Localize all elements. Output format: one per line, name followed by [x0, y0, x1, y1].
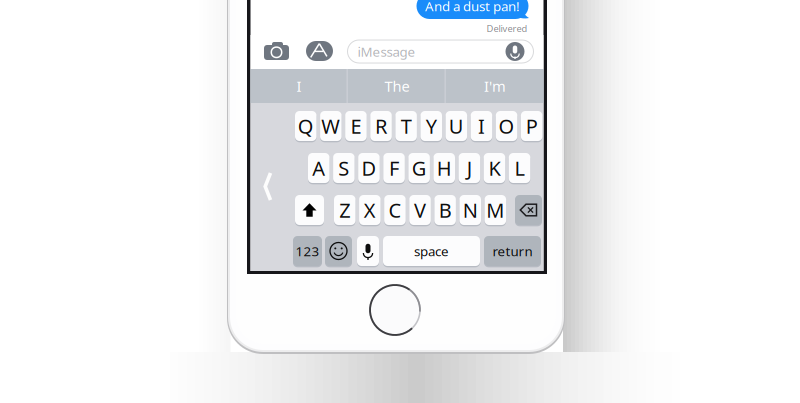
button[interactable]: L — [509, 153, 530, 185]
staticText: I — [478, 113, 485, 139]
staticText: N — [463, 197, 478, 223]
button[interactable]: K — [484, 153, 505, 185]
button[interactable]: S — [333, 153, 355, 185]
button[interactable]: D — [358, 153, 380, 185]
staticText: U — [449, 113, 464, 139]
button[interactable]: E — [345, 111, 367, 143]
staticText: F — [389, 155, 399, 181]
staticText: K — [488, 155, 500, 181]
staticText: C — [388, 197, 401, 223]
button[interactable]: O — [496, 111, 517, 143]
staticText: S — [338, 155, 349, 181]
staticText: P — [526, 113, 538, 139]
staticText: W — [321, 113, 340, 139]
button[interactable]: H — [433, 153, 455, 185]
button[interactable]: Delete — [515, 195, 542, 227]
button[interactable]: iMessage — [347, 40, 533, 63]
button[interactable]: V — [409, 195, 431, 227]
staticText: J — [467, 155, 472, 181]
button[interactable]: Z — [334, 195, 355, 227]
staticText: O — [499, 113, 515, 139]
button[interactable]: C — [384, 195, 406, 227]
button[interactable]: Q — [295, 111, 316, 143]
button[interactable]: T — [395, 111, 417, 143]
button[interactable]: space — [383, 236, 480, 268]
staticText: X — [364, 197, 376, 223]
button[interactable]: X — [359, 195, 381, 227]
button[interactable]: I'm — [446, 69, 543, 103]
staticText: B — [439, 197, 452, 223]
staticText: Q — [298, 113, 314, 139]
staticText: Z — [339, 197, 350, 223]
button[interactable]: I — [250, 69, 347, 103]
staticText: I'm — [484, 76, 506, 96]
staticText: Y — [426, 113, 437, 139]
button[interactable]: R — [370, 111, 392, 143]
staticText: T — [401, 113, 412, 139]
button[interactable]: W — [320, 111, 342, 143]
staticText: Delivered — [486, 22, 527, 35]
button[interactable]: The — [348, 69, 445, 103]
button[interactable]: P — [521, 111, 542, 143]
staticText: D — [361, 155, 376, 181]
button[interactable]: Take photo — [262, 40, 292, 62]
button[interactable]: Y — [420, 111, 442, 143]
staticText: A — [312, 155, 325, 181]
staticText: R — [375, 113, 387, 139]
staticText: E — [350, 113, 361, 139]
staticText: return — [492, 242, 532, 260]
button[interactable]: iMessage apps — [304, 40, 334, 62]
button[interactable]: N — [459, 195, 481, 227]
button[interactable]: U — [446, 111, 467, 143]
button[interactable]: G — [408, 153, 430, 185]
button[interactable]: Dictate — [357, 236, 379, 268]
staticText: I — [296, 76, 301, 96]
staticText: G — [412, 155, 427, 181]
button[interactable]: B — [434, 195, 456, 227]
staticText: V — [414, 197, 426, 223]
staticText: And a dust pan! — [425, 0, 520, 15]
staticText: L — [514, 155, 524, 181]
button[interactable]: J — [459, 153, 480, 185]
button[interactable]: Emoji — [325, 236, 352, 268]
staticText: 123 — [295, 242, 319, 260]
button[interactable]: M — [485, 195, 506, 227]
button[interactable]: return — [484, 236, 541, 268]
button[interactable]: A — [308, 153, 329, 185]
staticText: H — [437, 155, 452, 181]
button[interactable]: F — [383, 153, 405, 185]
staticText: M — [486, 197, 504, 223]
button[interactable]: I — [471, 111, 492, 143]
staticText: iMessage — [357, 43, 415, 60]
staticText: The — [384, 76, 409, 96]
staticText: space — [414, 242, 449, 260]
button[interactable]: 123 — [293, 236, 322, 268]
button[interactable]: Shift — [295, 195, 324, 227]
